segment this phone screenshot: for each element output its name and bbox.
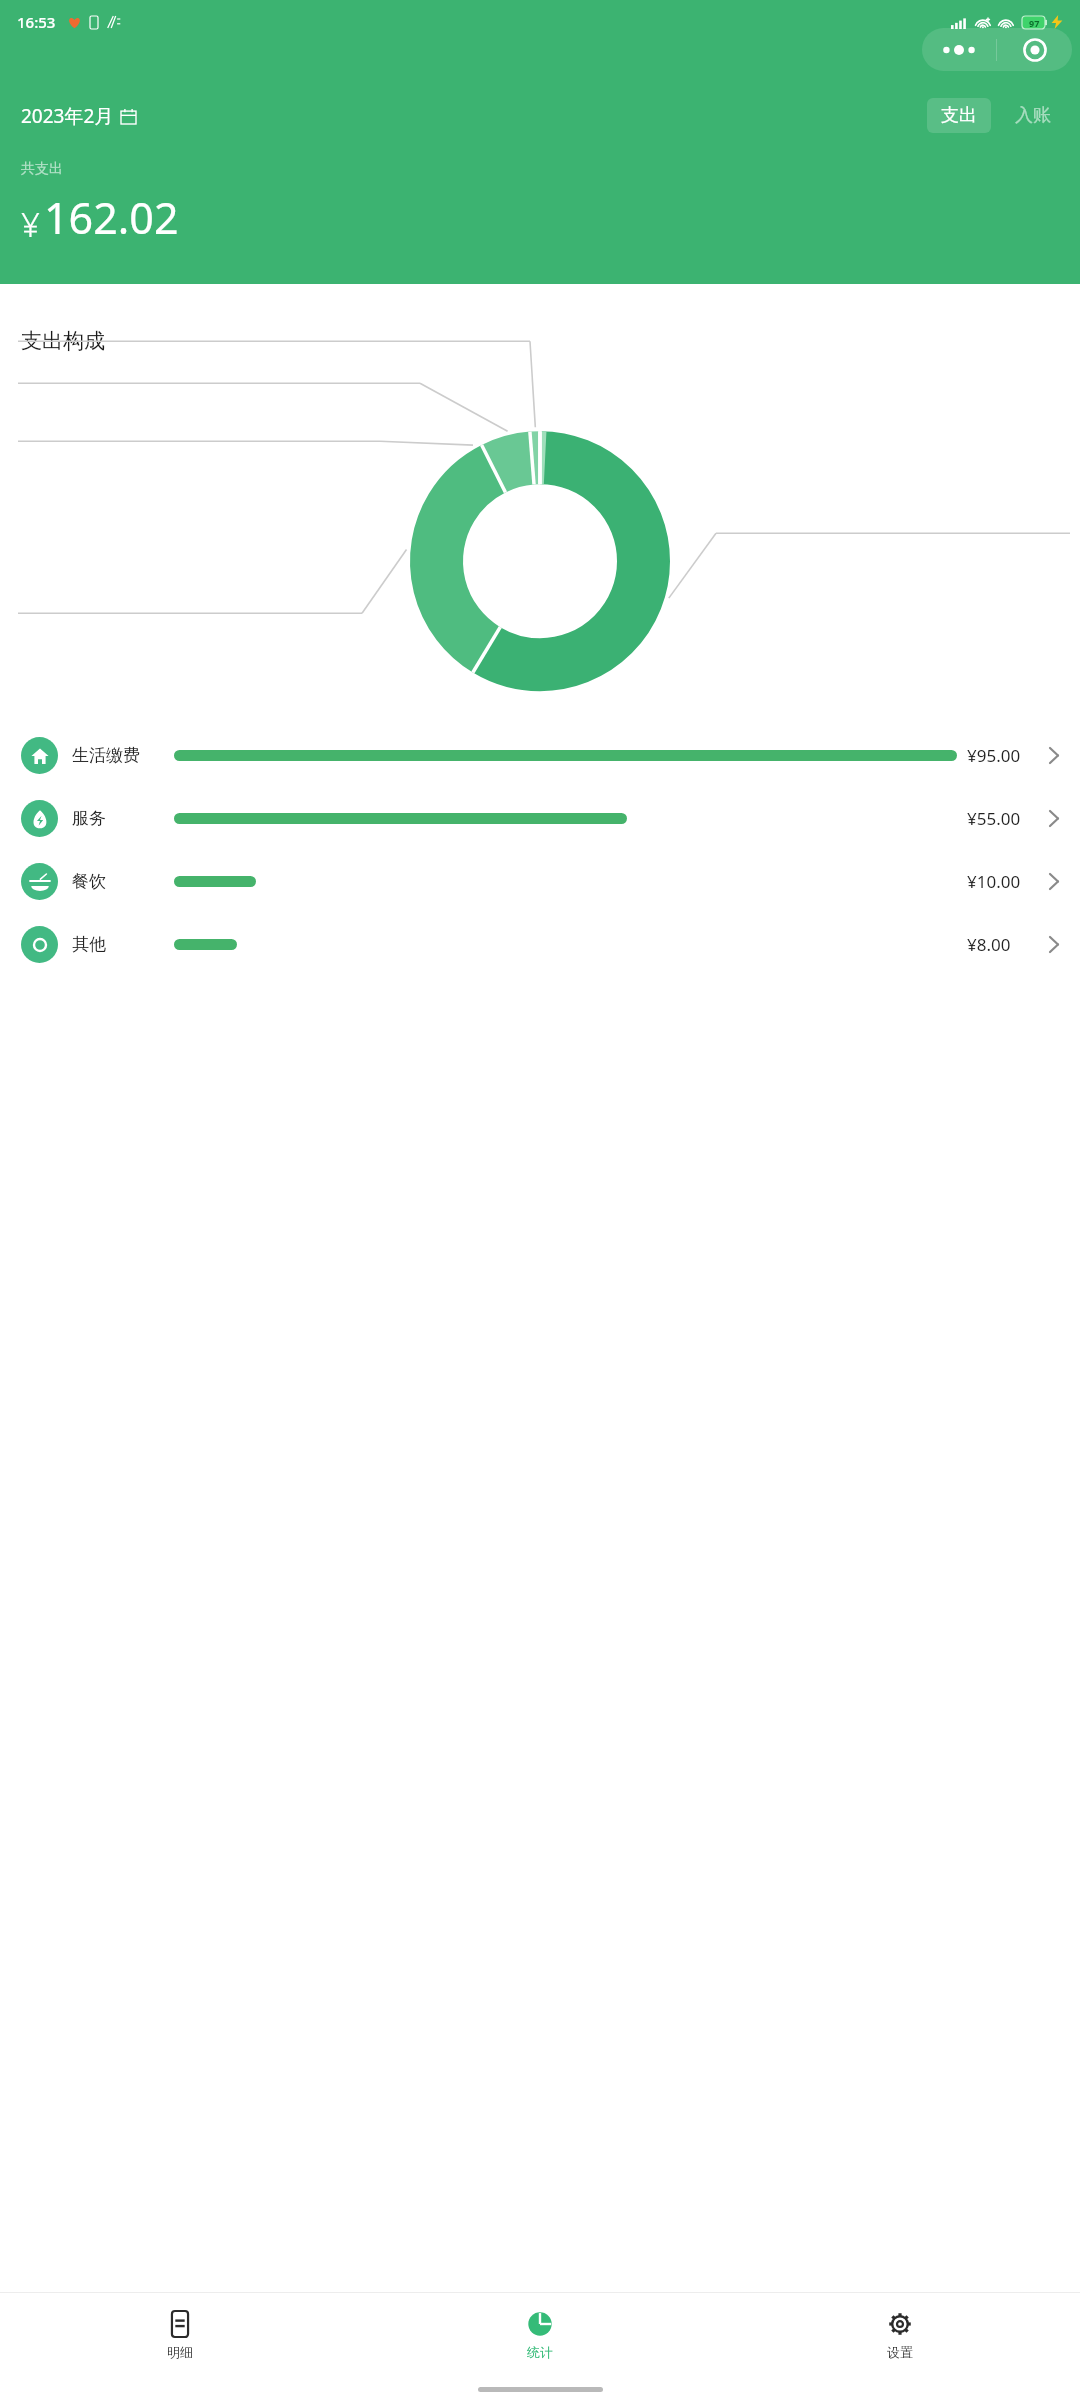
button[interactable]: 明细	[0, 2293, 360, 2378]
button[interactable]: 服务	[0, 787, 1080, 850]
button[interactable]: 生活缴费	[0, 724, 1080, 787]
button[interactable]: 餐饮	[0, 850, 1080, 913]
button[interactable]: 更多	[922, 28, 996, 71]
staticText: 统计	[527, 2344, 553, 2360]
button[interactable]: 入账	[1007, 98, 1059, 133]
staticText: 明细	[167, 2344, 193, 2360]
staticText: 入账	[1015, 104, 1051, 127]
staticText: 设置	[887, 2344, 913, 2360]
staticText: ¥95.00	[967, 744, 1045, 767]
staticText: ¥8.00	[967, 933, 1045, 956]
button[interactable]: 其他	[0, 913, 1080, 976]
staticText: 2023年2月	[21, 103, 114, 129]
staticText: ¥55.00	[967, 807, 1045, 830]
staticText: 生活缴费	[72, 745, 164, 766]
staticText: ¥	[21, 202, 40, 247]
staticText: 162.02	[44, 188, 179, 247]
button[interactable]: 统计	[360, 2293, 720, 2378]
button[interactable]: 支出	[927, 98, 991, 133]
staticText: ¥10.00	[967, 870, 1045, 893]
staticText: 服务	[72, 808, 164, 829]
staticText: 共支出	[21, 160, 63, 178]
button[interactable]: 关闭	[997, 28, 1072, 71]
staticText: 支出	[941, 104, 977, 127]
button[interactable]: 设置	[720, 2293, 1080, 2378]
staticText: 16:53	[17, 12, 56, 32]
staticText: 其他	[72, 934, 164, 955]
button[interactable]: 2023年2月	[21, 99, 136, 133]
staticText: 支出构成	[21, 328, 105, 354]
staticText: 97	[1029, 17, 1040, 29]
staticText: 餐饮	[72, 871, 164, 892]
